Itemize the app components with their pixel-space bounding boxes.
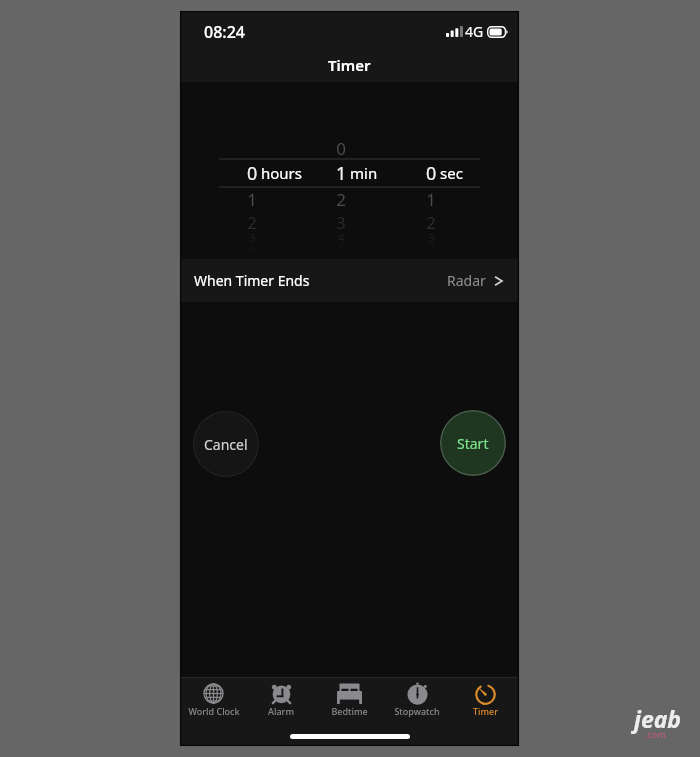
staticText: Radar xyxy=(447,271,486,290)
staticText: 1 xyxy=(426,188,436,211)
staticText: min xyxy=(350,163,378,183)
staticText: Cancel xyxy=(204,435,248,454)
button[interactable]: Start xyxy=(440,410,506,476)
staticText: 3 xyxy=(428,230,435,245)
staticText: Bedtime xyxy=(331,705,368,717)
staticText: 0 xyxy=(336,137,346,160)
staticText: jeab xyxy=(634,703,681,734)
staticText: 1 xyxy=(336,161,347,186)
button[interactable]: World Clock xyxy=(180,677,247,746)
staticText: Timer xyxy=(473,705,498,717)
button[interactable]: Timer xyxy=(451,677,519,746)
button[interactable]: Bedtime xyxy=(315,677,383,746)
staticText: 2 xyxy=(247,212,257,234)
button[interactable]: Cancel xyxy=(193,411,259,477)
staticText: World Clock xyxy=(188,705,240,717)
button[interactable]: Stopwatch xyxy=(383,677,451,746)
staticText: Start xyxy=(457,434,489,453)
staticText: Stopwatch xyxy=(394,705,440,717)
staticText: 4 xyxy=(338,230,345,245)
staticText: 2 xyxy=(336,188,346,211)
staticText: Timer xyxy=(328,55,371,75)
staticText: 2 xyxy=(426,212,436,234)
staticText: 1 xyxy=(247,188,257,211)
staticText: 0 xyxy=(247,161,258,186)
staticText: 0 xyxy=(426,161,437,186)
staticText: When Timer Ends xyxy=(194,271,310,290)
staticText: .com xyxy=(645,728,666,740)
button[interactable]: When Timer Ends xyxy=(180,259,519,302)
staticText: sec xyxy=(440,163,463,183)
staticText: 3 xyxy=(336,212,346,234)
staticText: Alarm xyxy=(268,705,294,717)
staticText: hours xyxy=(261,163,302,183)
button[interactable]: Alarm xyxy=(247,677,315,746)
staticText: 08:24 xyxy=(204,21,245,43)
staticText: 4G xyxy=(465,22,484,41)
staticText: 3 xyxy=(249,230,256,245)
